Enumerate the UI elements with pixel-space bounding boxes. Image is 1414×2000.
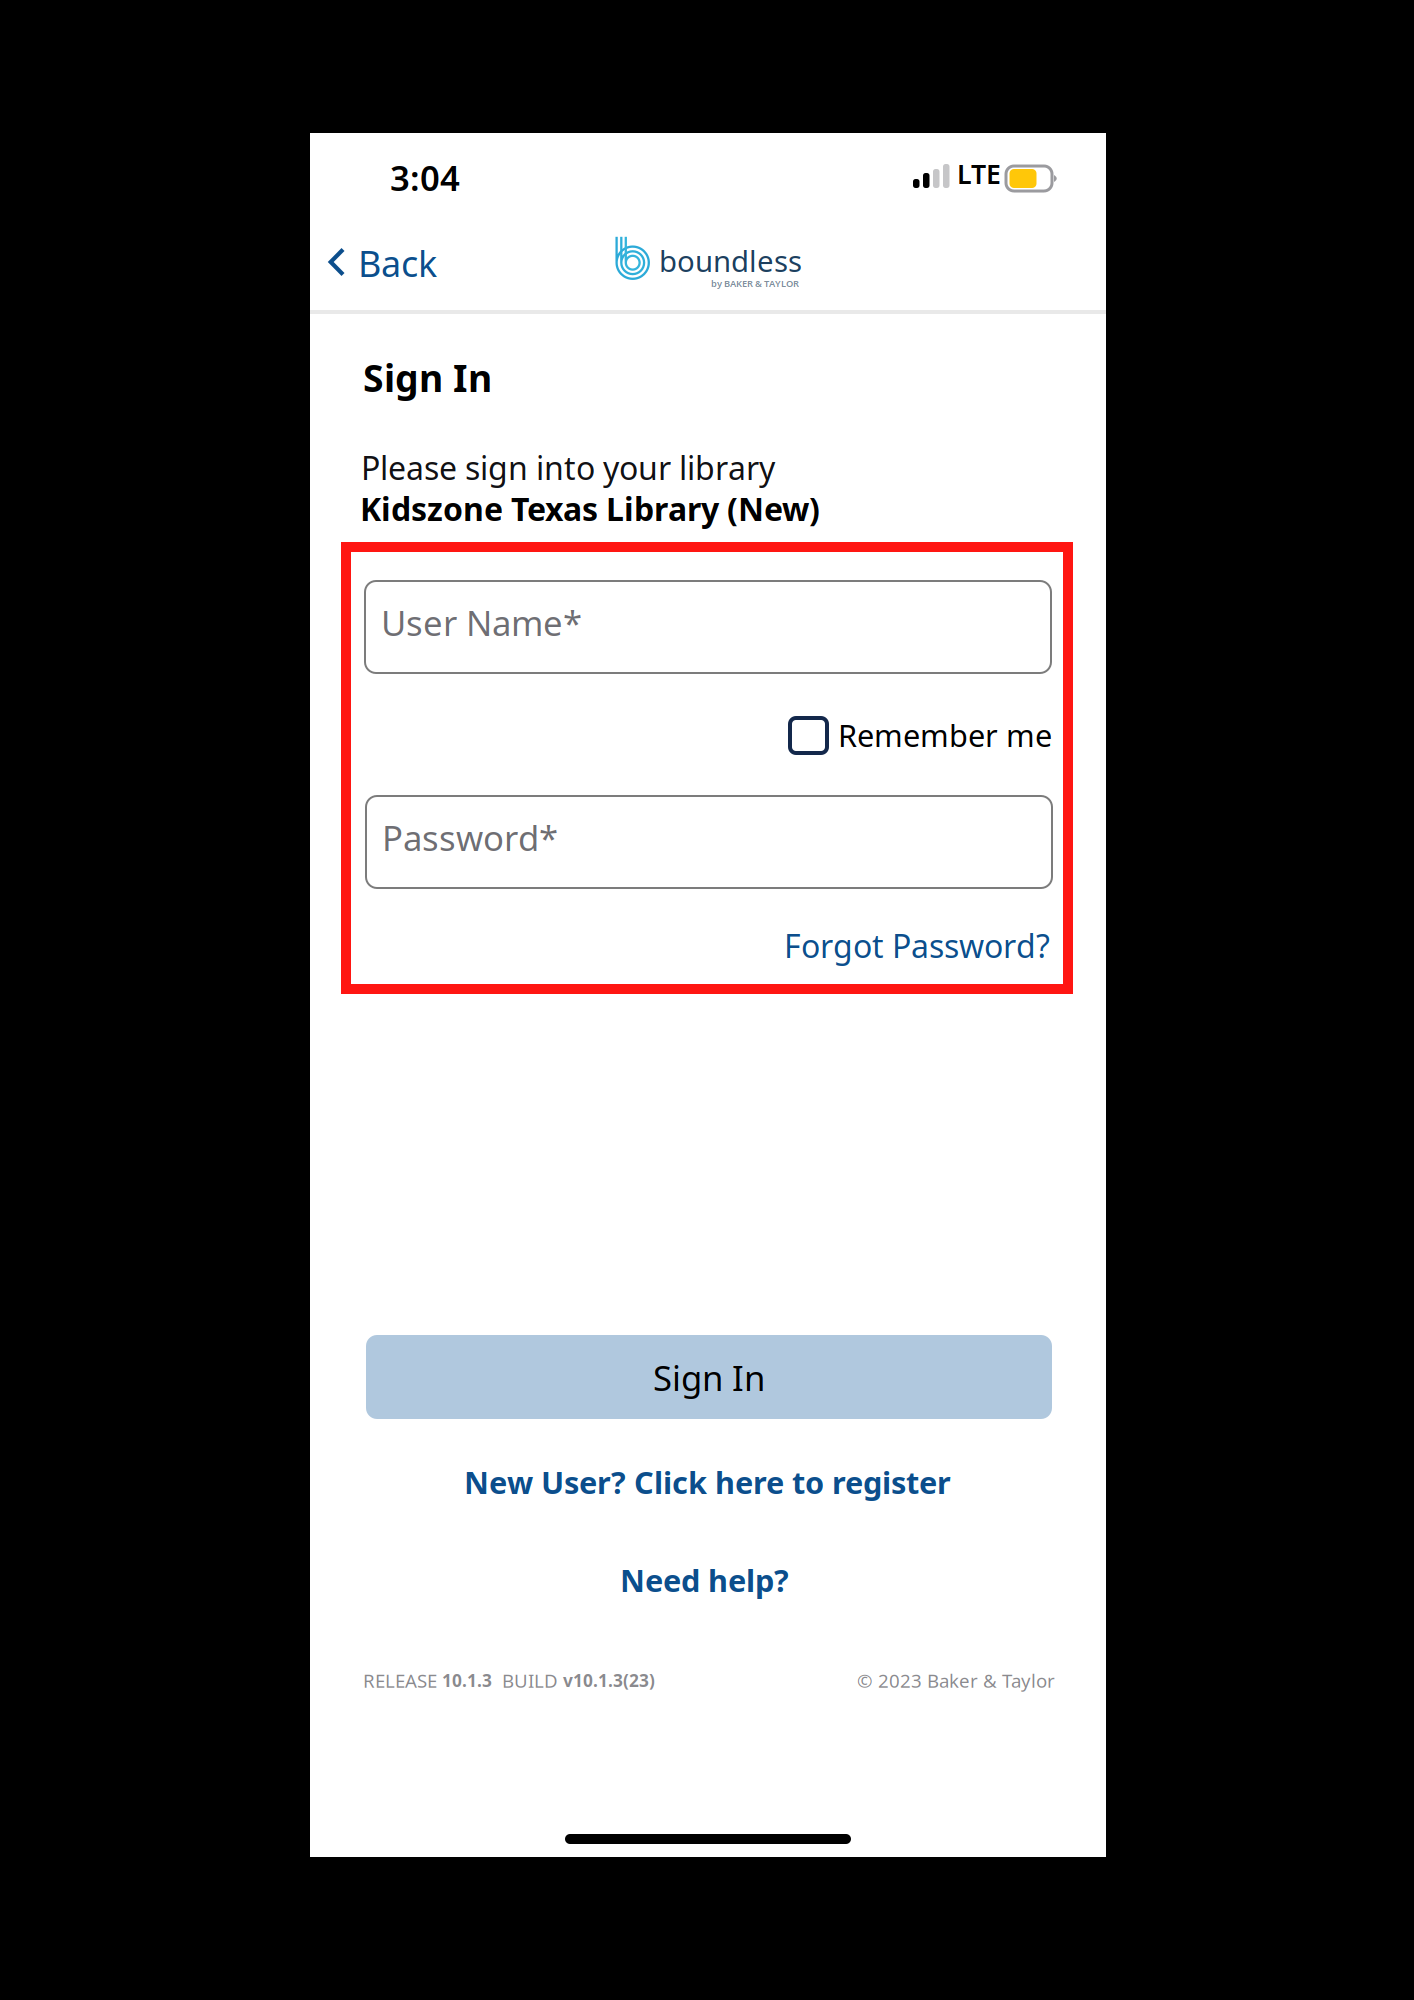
staticText: New User? Click here to register bbox=[464, 1462, 951, 1502]
button[interactable]: Need help? bbox=[615, 1557, 805, 1601]
button[interactable]: Back bbox=[313, 229, 458, 303]
staticText: Back bbox=[358, 239, 437, 287]
button[interactable]: New User? Click here to register bbox=[460, 1459, 960, 1503]
staticText: RELEASE bbox=[363, 1668, 442, 1693]
staticText: Please sign into your library bbox=[361, 446, 775, 489]
staticText: Sign In bbox=[653, 1355, 765, 1401]
staticText: BUILD bbox=[492, 1668, 563, 1693]
button[interactable]: Sign In bbox=[366, 1335, 1052, 1419]
staticText: Sign In bbox=[363, 353, 492, 402]
staticText: 10.1.3 bbox=[442, 1669, 492, 1692]
staticText: boundless bbox=[659, 241, 802, 280]
staticText: Need help? bbox=[620, 1560, 789, 1600]
staticText: © 2023 Baker & Taylor bbox=[857, 1668, 1055, 1693]
staticText: by BAKER & TAYLOR bbox=[711, 277, 799, 290]
staticText: LTE bbox=[957, 156, 1001, 191]
staticText: Kidszone Texas Library (New) bbox=[360, 487, 820, 530]
staticText: 3:04 bbox=[390, 155, 460, 201]
button[interactable]: Remember me bbox=[790, 718, 1052, 754]
staticText: Password* bbox=[382, 815, 558, 861]
button[interactable]: Password* bbox=[366, 796, 1052, 888]
staticText: User Name* bbox=[381, 600, 582, 646]
button[interactable]: Forgot Password? bbox=[785, 923, 1057, 971]
button[interactable]: User Name* bbox=[365, 581, 1051, 673]
staticText: v10.1.3(23) bbox=[563, 1669, 655, 1692]
staticText: Remember me bbox=[838, 715, 1052, 755]
staticText: Forgot Password? bbox=[784, 924, 1050, 967]
